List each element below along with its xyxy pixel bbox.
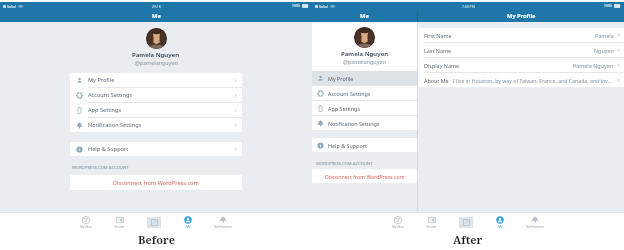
button[interactable]: Notifications xyxy=(212,215,234,230)
staticText: 100% xyxy=(604,4,613,8)
staticText: My Sites xyxy=(80,225,92,229)
button[interactable]: My Sites xyxy=(78,215,94,230)
staticText: 29:18 xyxy=(152,4,161,9)
staticText: Me xyxy=(186,225,191,229)
button[interactable]: Help & Support xyxy=(312,138,417,152)
staticText: WORDPRESS.COM ACCOUNT xyxy=(316,161,373,167)
staticText: App Settings xyxy=(328,105,360,112)
staticText: Help & Support xyxy=(88,145,129,153)
button[interactable]: Disconnect from WordPress.com xyxy=(70,175,242,190)
button[interactable]: Help & Support xyxy=(70,142,242,156)
staticText: Before xyxy=(138,232,175,247)
button[interactable]: Disconnect from WordPress.com xyxy=(312,169,417,183)
button[interactable]: Notification Settings xyxy=(70,118,242,132)
button[interactable]: My Sites xyxy=(390,215,406,230)
staticText: Display Name xyxy=(424,62,459,69)
staticText: Pamela Nguyen xyxy=(132,51,180,59)
button[interactable]: Display Name xyxy=(418,58,624,72)
button[interactable]: Notifications xyxy=(524,215,546,230)
staticText: Disconnect from WordPress.com xyxy=(113,179,199,187)
staticText: After xyxy=(453,232,483,247)
staticText: Safari xyxy=(319,4,329,9)
staticText: Pamela Nguyen xyxy=(341,50,389,58)
staticText: Notifications xyxy=(526,225,544,229)
staticText: WORDPRESS.COM ACCOUNT xyxy=(72,165,129,171)
button[interactable]: Reader xyxy=(112,215,127,230)
button[interactable]: My Profile xyxy=(312,71,417,85)
staticText: @pamelanguyen xyxy=(135,59,178,66)
staticText: Pamela Nguyen xyxy=(573,62,614,69)
staticText: Safari xyxy=(7,4,17,9)
button[interactable]: My Profile xyxy=(70,73,242,87)
staticText: 100% xyxy=(292,4,301,8)
staticText: Notifications xyxy=(214,225,232,229)
staticText: Account Settings xyxy=(88,91,133,99)
staticText: My Profile xyxy=(328,75,354,82)
button[interactable]: First Name xyxy=(418,28,624,42)
staticText: Reader xyxy=(114,225,125,229)
button[interactable]: Account Settings xyxy=(70,88,242,102)
staticText: First Name xyxy=(424,32,452,39)
staticText: Me xyxy=(152,12,161,20)
staticText: I live in Houston, by way of Taiwan, Fra… xyxy=(453,77,614,84)
button[interactable]: New Post xyxy=(145,216,163,229)
staticText: My Profile xyxy=(507,12,536,20)
button[interactable]: Account Settings xyxy=(312,86,417,100)
staticText: Notification Settings xyxy=(88,121,142,129)
button[interactable]: Me xyxy=(182,215,194,230)
staticText: My Sites xyxy=(392,225,404,229)
staticText: Help & Support xyxy=(328,142,367,149)
staticText: 7:58 PM xyxy=(462,4,475,9)
staticText: Reader xyxy=(426,225,437,229)
staticText: Nguyen xyxy=(594,47,614,54)
staticText: About Me xyxy=(424,77,449,84)
button[interactable]: Reader xyxy=(424,215,439,230)
button[interactable]: Last Name xyxy=(418,43,624,57)
button[interactable]: About Me xyxy=(418,73,624,87)
button[interactable]: App Settings xyxy=(70,103,242,117)
button[interactable]: Me xyxy=(494,215,506,230)
staticText: @pamelanguyen xyxy=(343,58,386,65)
staticText: Notification Settings xyxy=(328,120,380,127)
staticText: App Settings xyxy=(88,106,122,114)
staticText: My Profile xyxy=(88,76,115,84)
staticText: Disconnect from WordPress.com xyxy=(325,173,405,180)
staticText: Pamela xyxy=(595,32,614,39)
button[interactable]: Notification Settings xyxy=(312,116,417,130)
staticText: Me xyxy=(498,225,503,229)
button[interactable]: New Post xyxy=(457,216,475,229)
staticText: Account Settings xyxy=(328,90,371,97)
staticText: Last Name xyxy=(424,47,451,54)
staticText: Me xyxy=(360,12,369,20)
button[interactable]: App Settings xyxy=(312,101,417,115)
